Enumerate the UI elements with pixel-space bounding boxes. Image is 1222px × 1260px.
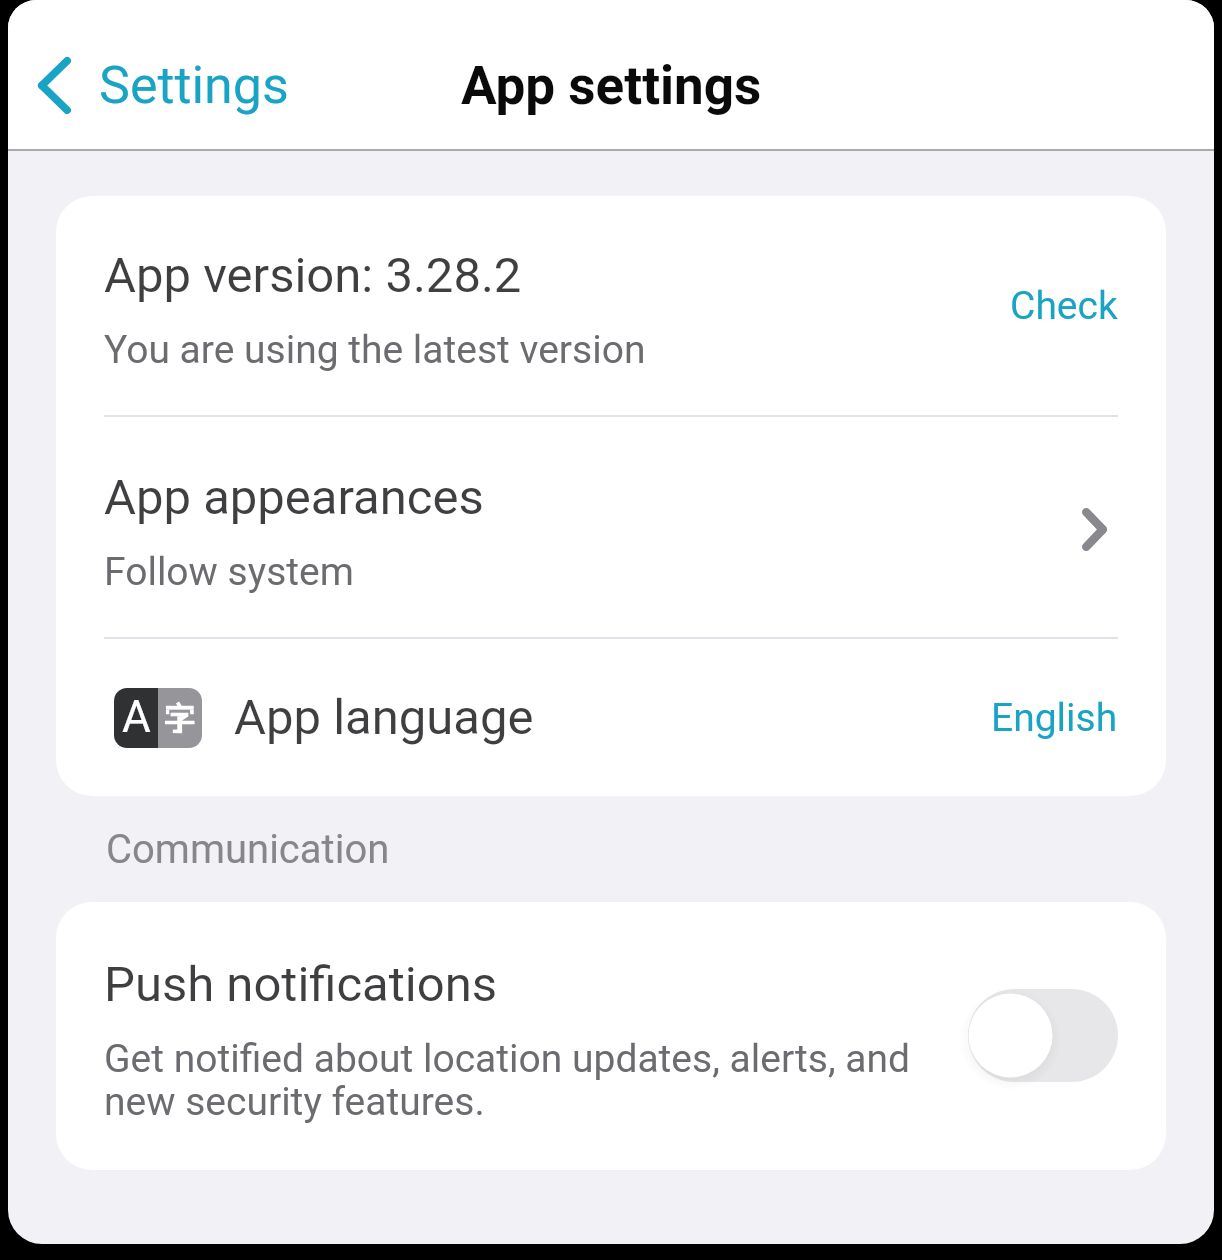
- staticText: A: [122, 691, 151, 743]
- staticText: Communication: [106, 826, 390, 873]
- staticText: You are using the latest version: [104, 327, 646, 373]
- button[interactable]: Push notifications toggle: [968, 983, 1118, 1088]
- staticText: Check: [1010, 283, 1118, 329]
- staticText: Settings: [99, 55, 289, 116]
- other: Open app appearances: [1082, 508, 1107, 551]
- staticText: English: [991, 695, 1118, 741]
- staticText: Follow system: [104, 549, 354, 595]
- staticText: App appearances: [104, 469, 484, 526]
- button[interactable]: A: [56, 639, 1166, 796]
- button[interactable]: Back to Settings: [30, 45, 297, 126]
- staticText: Get notified about location updates, ale…: [104, 1036, 948, 1125]
- staticText: Push notifications: [104, 956, 498, 1013]
- button[interactable]: App version: 3.28.2: [56, 196, 1166, 415]
- button[interactable]: Push notifications: [56, 902, 1166, 1170]
- staticText: App language: [234, 689, 991, 746]
- staticText: App settings: [461, 55, 762, 117]
- button[interactable]: Check: [1000, 265, 1128, 347]
- staticText: App version: 3.28.2: [104, 247, 522, 304]
- button[interactable]: App appearances: [56, 417, 1166, 637]
